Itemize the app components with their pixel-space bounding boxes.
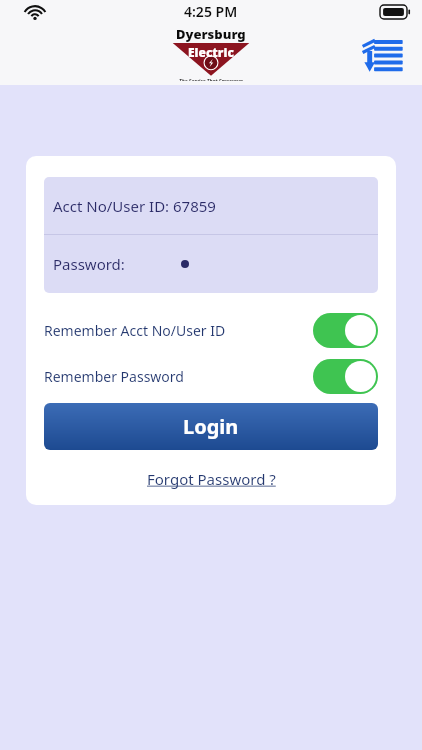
staticText: The Service That Empowers	[179, 78, 244, 81]
staticText: Acct No/User ID: 67859	[53, 196, 216, 216]
staticText: Remember Acct No/User ID	[44, 321, 226, 340]
staticText: Forgot Password ?	[147, 469, 276, 489]
button[interactable]: Login	[44, 403, 378, 450]
staticText: Login	[183, 413, 239, 440]
other: Toggle on	[313, 313, 378, 348]
button[interactable]: Password:	[44, 235, 378, 293]
button[interactable]: Remember Password	[44, 359, 378, 394]
button[interactable]: Forgot Password ?	[143, 467, 280, 491]
staticText: 4:25 PM	[184, 2, 238, 21]
staticText: Dyersburg	[176, 25, 246, 43]
button[interactable]: Menu	[360, 35, 404, 73]
button[interactable]: Remember Acct No/User ID	[44, 313, 378, 348]
other: Toggle on	[313, 359, 378, 394]
staticText: Remember Password	[44, 367, 184, 386]
staticText: Electric	[188, 44, 234, 60]
staticText: Password:	[53, 254, 125, 274]
button[interactable]: Acct No/User ID: 67859	[44, 177, 378, 234]
